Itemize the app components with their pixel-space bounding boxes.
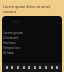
button[interactable]: Sed eius: [3, 41, 16, 45]
button[interactable]: Key: [51, 66, 53, 69]
button[interactable]: Key: [45, 66, 47, 69]
button[interactable]: Lorem ipsum: [3, 31, 23, 35]
staticText: Nulla: [13, 20, 21, 24]
button[interactable]: Consectet: [3, 36, 18, 40]
button[interactable]: Key: [17, 66, 19, 69]
staticText: Lorem ipsum dolor sit amet, consect: [3, 4, 64, 14]
button[interactable]: Key: [28, 66, 30, 69]
button[interactable]: Tempor inc: [3, 46, 20, 50]
button[interactable]: Key: [6, 66, 8, 69]
button[interactable]: Key: [56, 66, 58, 69]
button[interactable]: Ut labo: [3, 51, 14, 55]
button[interactable]: Key: [34, 66, 36, 69]
button[interactable]: Key: [39, 66, 41, 69]
button[interactable]: Key: [11, 66, 13, 69]
button[interactable]: Key: [23, 66, 25, 69]
